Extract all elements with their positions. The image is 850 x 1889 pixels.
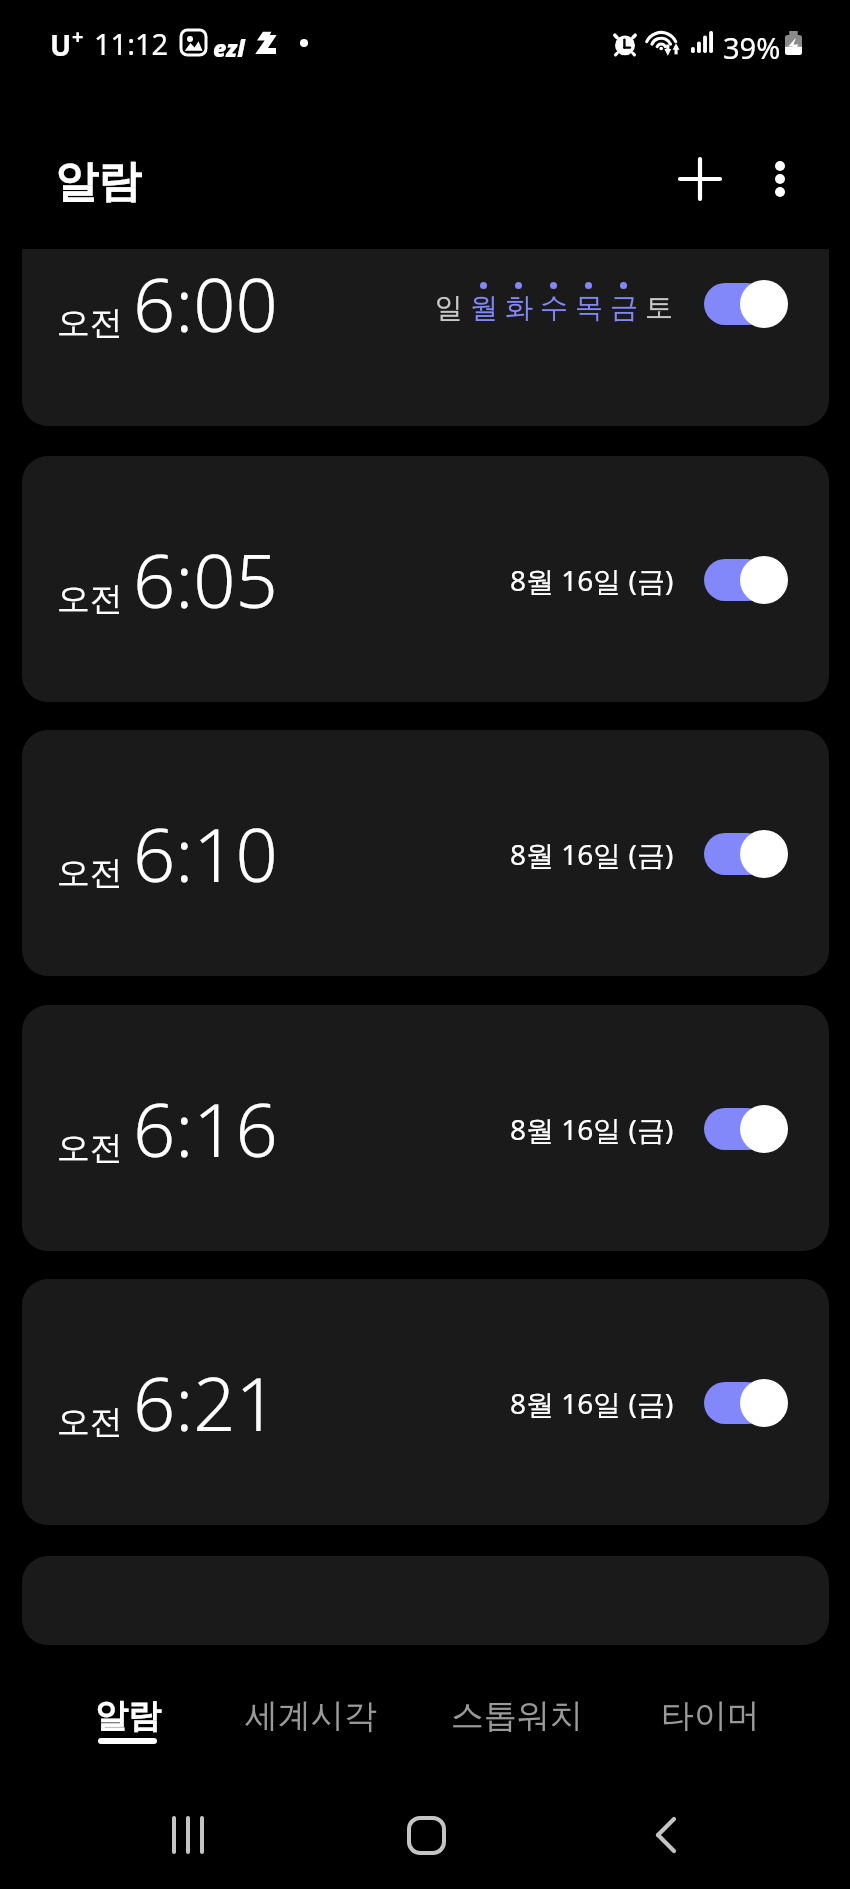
staticText: U: [50, 26, 72, 64]
staticText: 오전: [57, 852, 123, 894]
staticText: 6:05: [133, 529, 278, 630]
staticText: 월: [470, 290, 498, 325]
button[interactable]: Back: [626, 1795, 706, 1875]
staticText: 알람: [95, 1695, 161, 1737]
staticText: 8월 16일 (금): [510, 561, 674, 599]
staticText: 오전: [57, 1401, 123, 1443]
staticText: 6:21: [133, 1352, 278, 1453]
button[interactable]: Toggle alarm: [704, 555, 788, 605]
staticText: 스톱워치: [451, 1695, 583, 1737]
button[interactable]: Toggle alarm: [704, 279, 788, 329]
button[interactable]: Add alarm: [652, 131, 748, 227]
staticText: 금: [610, 290, 638, 325]
staticText: +: [72, 23, 84, 50]
button[interactable]: Toggle alarm: [704, 1378, 788, 1428]
staticText: 8월 16일 (금): [510, 835, 674, 873]
staticText: ezl: [213, 32, 245, 63]
button[interactable]: Recents: [148, 1795, 228, 1875]
staticText: 39%: [723, 28, 781, 67]
button[interactable]: 타이머: [620, 1680, 800, 1776]
button[interactable]: Toggle alarm: [704, 1104, 788, 1154]
button[interactable]: Toggle alarm: [704, 829, 788, 879]
staticText: 토: [645, 290, 673, 325]
button[interactable]: 알람: [28, 1680, 227, 1776]
staticText: 6:16: [133, 1078, 278, 1179]
staticText: 세계시각: [245, 1695, 377, 1737]
button[interactable]: 오전: [22, 1005, 829, 1251]
button[interactable]: 스톱워치: [421, 1680, 613, 1776]
staticText: 목: [575, 290, 603, 325]
button[interactable]: Home: [386, 1795, 466, 1875]
button[interactable]: 오전: [22, 456, 829, 702]
staticText: 알람: [55, 155, 141, 209]
staticText: 오전: [57, 302, 123, 344]
staticText: 11:12: [94, 24, 169, 63]
staticText: 6:10: [133, 803, 278, 904]
button[interactable]: 오전: [22, 249, 829, 426]
staticText: 화: [505, 290, 533, 325]
staticText: 8월 16일 (금): [510, 1110, 674, 1148]
staticText: 오전: [57, 578, 123, 620]
button[interactable]: More options: [732, 131, 828, 227]
staticText: 타이머: [661, 1695, 760, 1737]
button[interactable]: 오전: [22, 730, 829, 976]
staticText: 수: [540, 290, 568, 325]
button[interactable]: 세계시각: [227, 1680, 394, 1776]
staticText: 일: [435, 290, 463, 325]
staticText: 오전: [57, 1127, 123, 1169]
button[interactable]: 오전: [22, 1279, 829, 1525]
staticText: 8월 16일 (금): [510, 1384, 674, 1422]
staticText: 6:00: [133, 253, 278, 354]
